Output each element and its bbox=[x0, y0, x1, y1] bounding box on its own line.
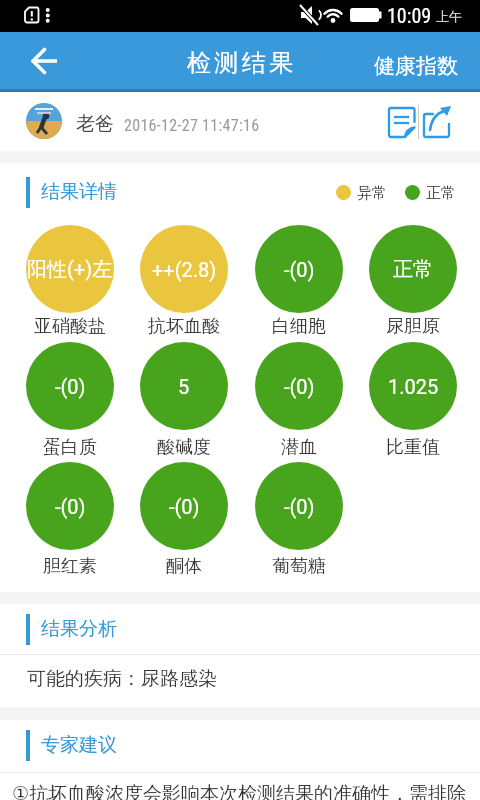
staticText: 亚硝酸盐 bbox=[34, 315, 106, 338]
staticText: -(0) bbox=[169, 495, 200, 518]
staticText: 正常 bbox=[426, 184, 456, 203]
staticText: 抗坏血酸 bbox=[148, 315, 220, 338]
staticText: 检测结果 bbox=[185, 48, 295, 78]
staticText: -(0) bbox=[284, 375, 315, 398]
staticText: 蛋白质 bbox=[43, 436, 97, 459]
staticText: 白细胞 bbox=[272, 315, 326, 338]
staticText: 阳性(+)左 bbox=[27, 257, 113, 282]
staticText: -(0) bbox=[55, 375, 86, 398]
button[interactable] bbox=[380, 98, 420, 144]
staticText: 5 bbox=[178, 375, 190, 398]
staticText: 1.025 bbox=[388, 375, 439, 398]
staticText: 异常 bbox=[357, 184, 387, 203]
button[interactable] bbox=[16, 40, 76, 84]
staticText: ++(2.8) bbox=[152, 258, 217, 281]
staticText: -(0) bbox=[284, 258, 315, 281]
staticText: ①抗坏血酸浓度会影响本次检测结果的准确性，需排除 bbox=[12, 782, 467, 800]
staticText: 比重值 bbox=[386, 436, 440, 459]
staticText: 健康指数 bbox=[374, 53, 458, 79]
button[interactable]: 健康指数 bbox=[350, 44, 480, 88]
staticText: 结果详情 bbox=[41, 180, 117, 204]
staticText: 潜血 bbox=[281, 436, 317, 459]
staticText: 可能的疾病：尿路感染 bbox=[27, 667, 217, 691]
staticText: 尿胆原 bbox=[386, 315, 440, 338]
staticText: 酮体 bbox=[166, 555, 202, 578]
staticText: 老爸 bbox=[76, 112, 114, 136]
staticText: 上午 bbox=[436, 8, 462, 24]
staticText: -(0) bbox=[284, 495, 315, 518]
button[interactable] bbox=[420, 98, 460, 144]
staticText: 专家建议 bbox=[41, 733, 117, 757]
staticText: 胆红素 bbox=[43, 555, 97, 578]
staticText: 正常 bbox=[393, 257, 433, 282]
staticText: -(0) bbox=[55, 495, 86, 518]
staticText: 结果分析 bbox=[41, 617, 117, 641]
staticText: 葡萄糖 bbox=[272, 555, 326, 578]
staticText: 10:09 bbox=[387, 4, 432, 27]
staticText: 酸碱度 bbox=[157, 436, 211, 459]
staticText: 2016-12-27 11:47:16 bbox=[124, 116, 260, 135]
